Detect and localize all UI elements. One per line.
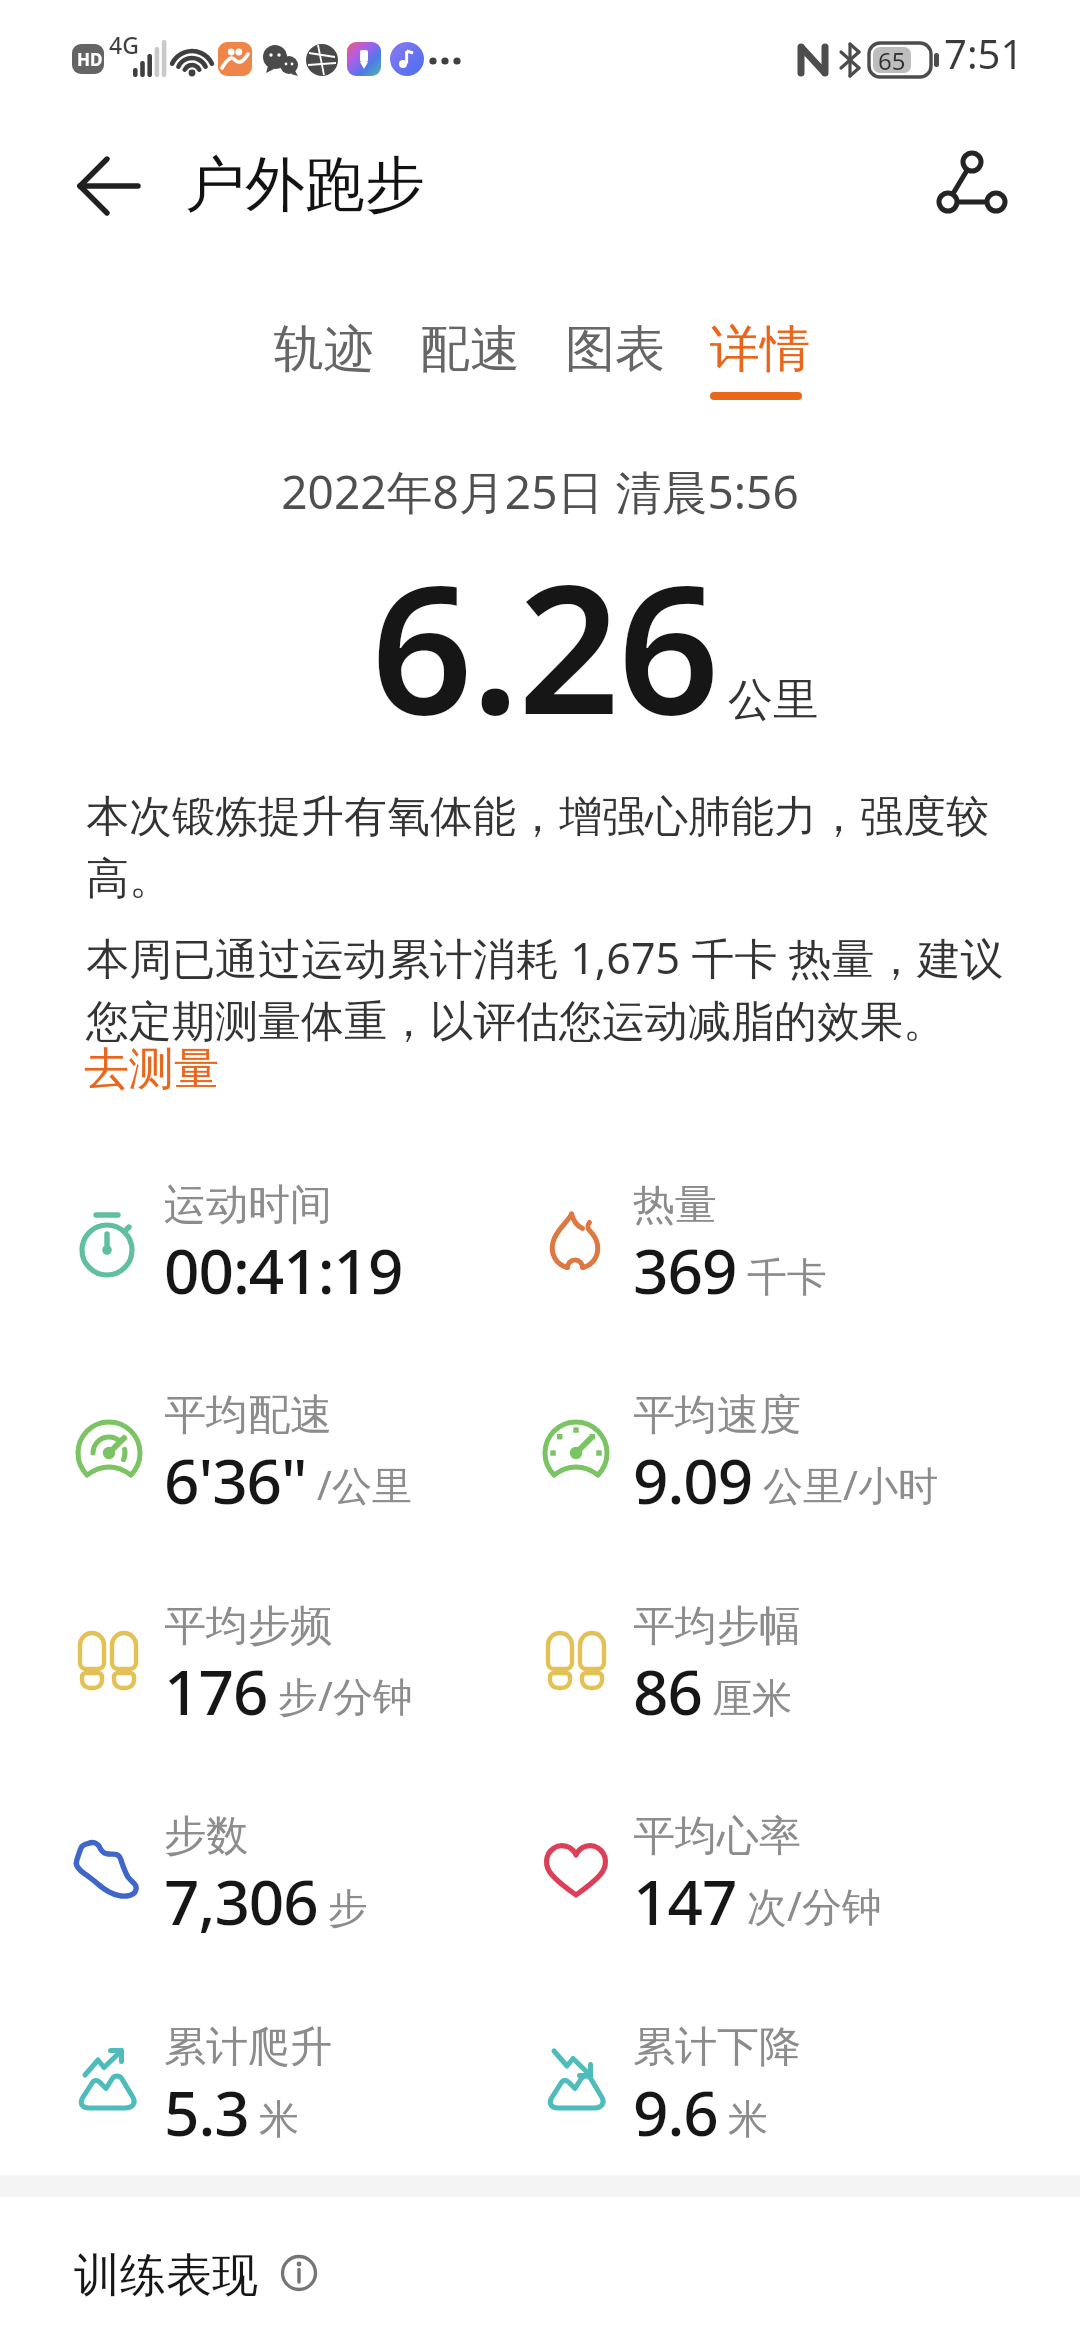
staticText: 次/分钟 [747, 1878, 882, 1933]
staticText: 户外跑步 [185, 147, 425, 223]
staticText: 00:41:19 [164, 1228, 403, 1312]
button[interactable] [76, 156, 140, 216]
staticText: 176 [164, 1649, 268, 1733]
staticText: 7:51 [944, 26, 1024, 80]
staticText: 147 [633, 1859, 737, 1943]
staticText: 9.6 [633, 2070, 718, 2154]
button[interactable]: 9.6 [633, 2070, 768, 2154]
staticText: 65 [878, 44, 906, 77]
staticText: 平均步幅 [633, 1600, 801, 1653]
button[interactable]: 配速 [420, 318, 520, 381]
button[interactable]: 7,306 [164, 1859, 368, 1943]
staticText: 训练表现 [74, 2247, 258, 2305]
staticText: HD [77, 48, 103, 71]
staticText: 平均速度 [633, 1389, 801, 1442]
staticText: 本周已通过运动累计消耗 1,675 千卡 热量，建议 您定期测量体重，以评估您运… [86, 928, 1004, 1049]
staticText: 运动时间 [164, 1179, 332, 1232]
staticText: 步 [328, 1883, 368, 1933]
staticText: 369 [633, 1228, 737, 1312]
button[interactable] [936, 148, 1008, 220]
staticText: 详情 [710, 318, 810, 381]
button[interactable]: 图表 [565, 318, 665, 381]
button[interactable]: 176 [164, 1649, 413, 1733]
staticText: 热量 [633, 1179, 717, 1232]
staticText: 6'36" [164, 1438, 307, 1522]
staticText: 图表 [565, 318, 665, 381]
button[interactable]: 去测量 [84, 1041, 219, 1098]
staticText: 平均心率 [633, 1810, 801, 1863]
staticText: 厘米 [712, 1673, 792, 1723]
staticText: 本次锻炼提升有氧体能，增强心肺能力，强度较 高。 [86, 790, 989, 906]
staticText: 5.3 [164, 2070, 249, 2154]
staticText: 累计下降 [633, 2021, 801, 2074]
staticText: 米 [259, 2094, 299, 2144]
staticText: 公里 [728, 672, 818, 729]
staticText: 9.09 [633, 1438, 753, 1522]
staticText: 步数 [164, 1810, 248, 1863]
staticText: 千卡 [747, 1252, 827, 1302]
staticText: /公里 [317, 1457, 412, 1512]
staticText: 平均配速 [164, 1389, 332, 1442]
staticText: 步/分钟 [278, 1668, 413, 1723]
button[interactable]: 00:41:19 [164, 1228, 403, 1312]
staticText: 2022年8月25日 清晨5:56 [281, 460, 799, 523]
staticText: 轨迹 [274, 318, 374, 381]
button[interactable]: 86 [633, 1649, 792, 1733]
button[interactable]: 369 [633, 1228, 827, 1312]
button[interactable]: 轨迹 [274, 318, 374, 381]
staticText: 累计爬升 [164, 2021, 332, 2074]
button[interactable]: 详情 [710, 318, 810, 381]
staticText: 配速 [420, 318, 520, 381]
staticText: 去测量 [84, 1041, 219, 1098]
staticText: 7,306 [164, 1859, 318, 1943]
button[interactable]: 6'36" [164, 1438, 412, 1522]
button[interactable]: 147 [633, 1859, 882, 1943]
staticText: 公里/小时 [763, 1457, 938, 1512]
staticText: 6.26 [371, 524, 718, 766]
button[interactable]: 5.3 [164, 2070, 299, 2154]
button[interactable]: 9.09 [633, 1438, 938, 1522]
staticText: 平均步频 [164, 1600, 332, 1653]
staticText: 米 [728, 2094, 768, 2144]
button[interactable] [280, 2254, 318, 2292]
staticText: 86 [633, 1649, 702, 1733]
staticText: 4G [109, 29, 139, 60]
